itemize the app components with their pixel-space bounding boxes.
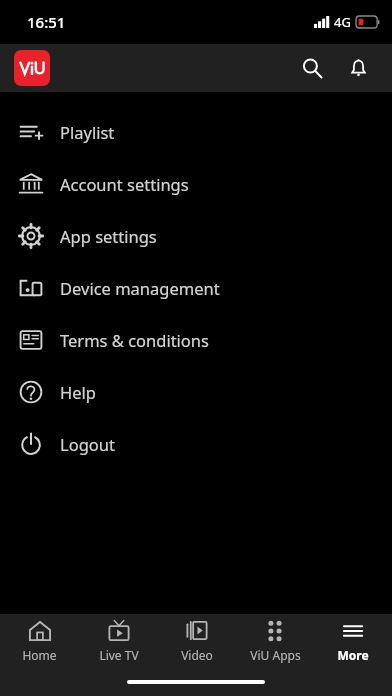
staticText: Terms & conditions (60, 329, 209, 351)
button[interactable]: Device management (0, 262, 392, 314)
staticText: Video (181, 647, 213, 663)
button[interactable]: Account settings (0, 158, 392, 210)
button[interactable]: App settings (0, 210, 392, 262)
button[interactable]: Playlist (0, 106, 392, 158)
staticText: Help (60, 381, 96, 403)
button[interactable]: Help (0, 366, 392, 418)
button[interactable]: Live TV (79, 614, 158, 668)
button[interactable]: More (314, 614, 392, 668)
button[interactable]: Video (158, 614, 236, 668)
button[interactable]: ViU home (14, 50, 50, 86)
staticText: App settings (60, 225, 157, 247)
staticText: ViU Apps (250, 647, 301, 663)
staticText: Home (22, 647, 57, 663)
staticText: Device management (60, 277, 220, 299)
staticText: Playlist (60, 121, 115, 143)
staticText: 4G (334, 13, 351, 31)
button[interactable]: Home (0, 614, 79, 668)
button[interactable]: ViU Apps (236, 614, 314, 668)
button[interactable]: Notifications (338, 48, 378, 88)
staticText: Live TV (99, 647, 139, 663)
button[interactable]: Logout (0, 418, 392, 470)
button[interactable]: Terms & conditions (0, 314, 392, 366)
staticText: Account settings (60, 173, 189, 195)
staticText: 16:51 (27, 12, 66, 32)
button[interactable]: Search (292, 48, 332, 88)
staticText: Logout (60, 433, 115, 455)
staticText: More (337, 647, 369, 663)
